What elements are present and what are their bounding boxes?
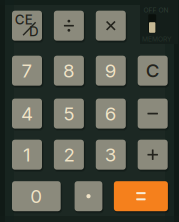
button[interactable]: 6 [95, 98, 128, 131]
button[interactable]: Power switch [140, 0, 178, 44]
staticText: 0 [30, 185, 42, 207]
button[interactable]: 2 [53, 139, 86, 172]
button[interactable]: Plus [137, 139, 170, 172]
staticText: 8 [63, 59, 75, 82]
button[interactable]: Divide [53, 10, 86, 43]
button[interactable]: Decimal point [74, 180, 105, 213]
staticText: OFF ON [143, 6, 168, 14]
staticText: 3 [105, 143, 117, 166]
staticText: 2 [63, 143, 74, 166]
staticText: 4 [21, 102, 33, 125]
button[interactable]: Equals [113, 180, 170, 213]
button[interactable]: Clear entry, clear display [11, 10, 44, 43]
button[interactable]: 3 [95, 139, 128, 172]
staticText: 9 [105, 59, 117, 82]
staticText: 1 [23, 143, 31, 166]
button[interactable]: 0 [11, 180, 63, 213]
button[interactable]: 8 [53, 55, 86, 88]
button[interactable]: Minus [137, 98, 170, 131]
button[interactable]: 7 [11, 55, 44, 88]
staticText: C [146, 59, 160, 82]
staticText: 6 [105, 102, 117, 125]
staticText: CE [15, 12, 33, 28]
button[interactable]: 5 [53, 98, 86, 131]
staticText: 5 [63, 102, 74, 125]
staticText: 7 [21, 59, 32, 82]
button[interactable]: 4 [11, 98, 44, 131]
staticText: D [29, 23, 39, 39]
staticText: MEMORY [142, 35, 172, 43]
button[interactable]: Multiply [95, 10, 128, 43]
button[interactable]: C [137, 55, 170, 88]
button[interactable]: 9 [95, 55, 128, 88]
button[interactable]: 1 [11, 139, 44, 172]
